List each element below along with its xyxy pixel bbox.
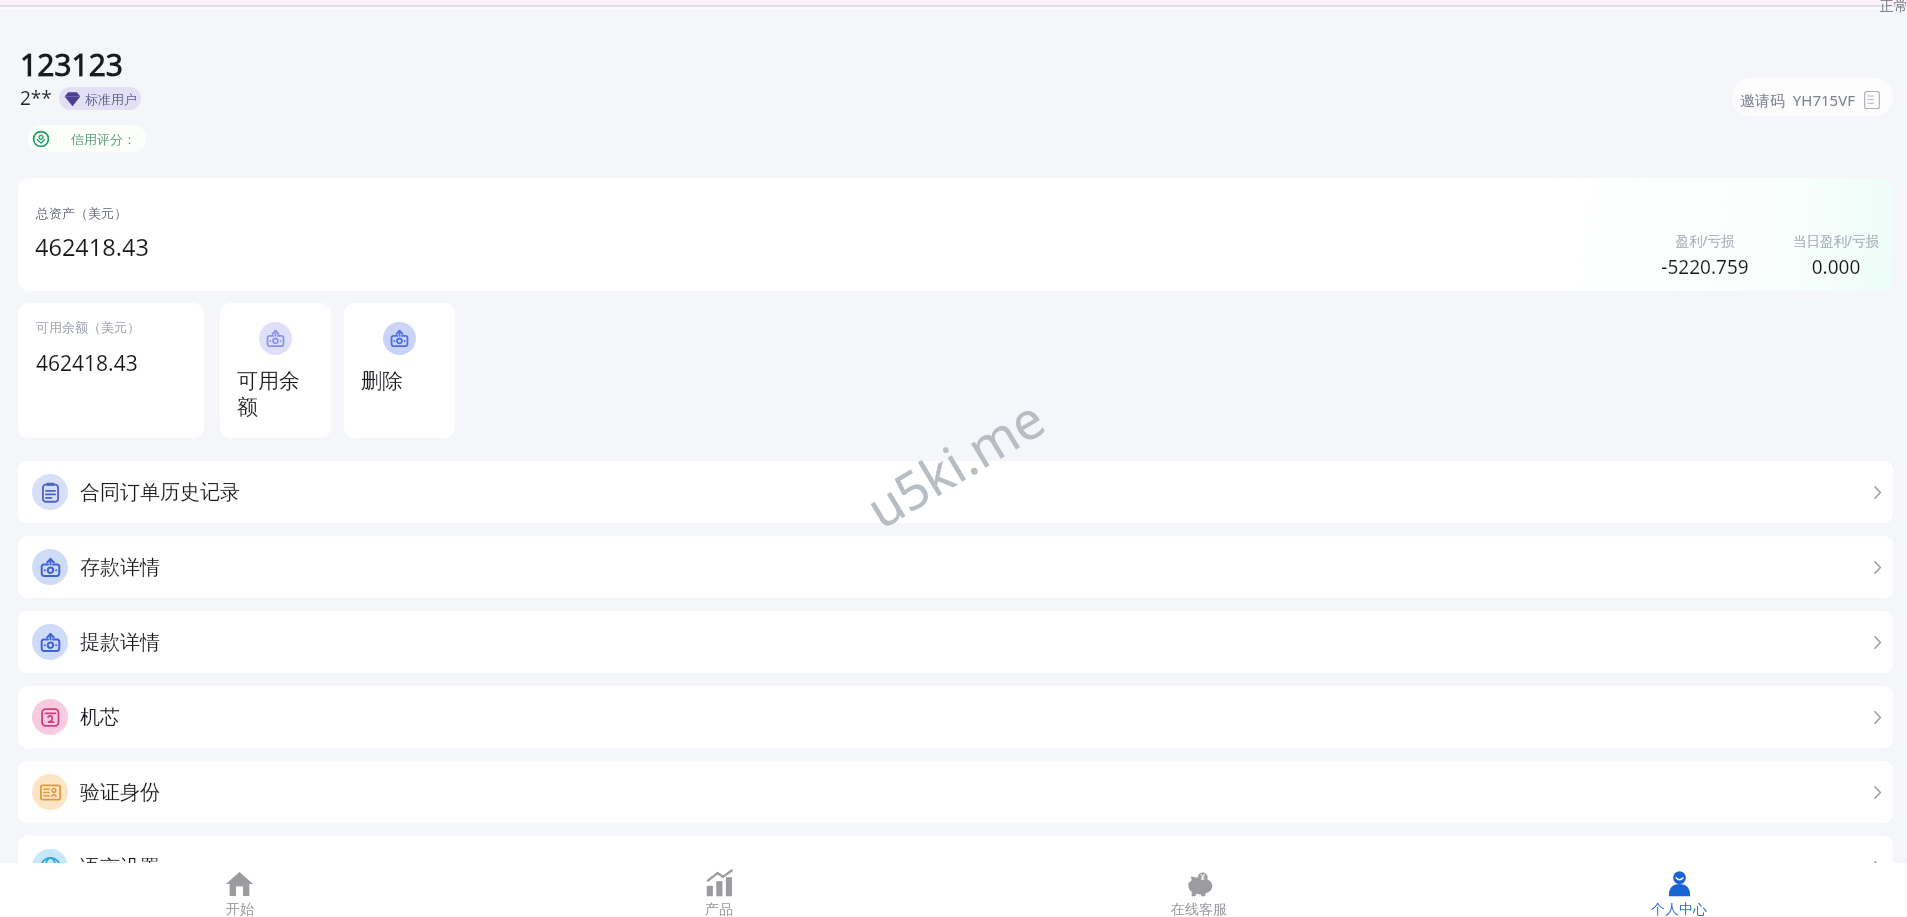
staticText: 总资产（美元） bbox=[36, 205, 127, 221]
button[interactable]: 验证身份 bbox=[18, 761, 1893, 823]
staticText: 当日盈利/亏损 bbox=[1781, 232, 1891, 250]
staticText: 产品 bbox=[705, 901, 733, 917]
button[interactable]: 可用余额 bbox=[220, 303, 331, 438]
staticText: 验证身份 bbox=[80, 780, 160, 805]
staticText: 个人中心 bbox=[1651, 901, 1707, 917]
staticText: 信用评分： bbox=[71, 131, 136, 147]
staticText: u5ki.me bbox=[853, 382, 1056, 543]
staticText: 邀请码 YH715VF bbox=[1740, 90, 1855, 110]
staticText: 可用余额 bbox=[237, 368, 303, 421]
staticText: 删除 bbox=[361, 368, 427, 394]
button[interactable]: 机芯 bbox=[18, 686, 1893, 748]
staticText: 正常 bbox=[1880, 0, 1907, 16]
staticText: 机芯 bbox=[80, 705, 120, 730]
button[interactable]: 删除 bbox=[344, 303, 455, 438]
button[interactable]: 信用评分： bbox=[28, 125, 146, 152]
button[interactable]: 在线客服 bbox=[959, 863, 1439, 917]
button[interactable]: 个人中心 bbox=[1439, 863, 1907, 917]
staticText: 2** bbox=[20, 85, 52, 111]
staticText: 提款详情 bbox=[80, 630, 160, 655]
staticText: 462418.43 bbox=[36, 349, 138, 378]
button[interactable]: 存款详情 bbox=[18, 536, 1893, 598]
staticText: 合同订单历史记录 bbox=[80, 480, 240, 505]
button[interactable]: 可用余额（美元） bbox=[18, 303, 204, 438]
button[interactable]: 标准用户 bbox=[59, 87, 141, 110]
other: Copy invite code bbox=[1864, 91, 1880, 109]
button[interactable]: 产品 bbox=[479, 863, 959, 917]
staticText: 可用余额（美元） bbox=[36, 319, 140, 335]
button[interactable]: 邀请码 YH715VF bbox=[1732, 78, 1893, 116]
staticText: 标准用户 bbox=[85, 91, 137, 107]
staticText: 存款详情 bbox=[80, 555, 160, 580]
staticText: 语言设置 bbox=[80, 855, 160, 880]
button[interactable]: 合同订单历史记录 bbox=[18, 461, 1893, 523]
staticText: 在线客服 bbox=[1171, 901, 1227, 917]
staticText: 462418.43 bbox=[35, 231, 149, 263]
button[interactable]: 总资产（美元） bbox=[18, 178, 1893, 291]
button[interactable]: 开始 bbox=[0, 863, 479, 917]
button[interactable]: 提款详情 bbox=[18, 611, 1893, 673]
staticText: -5220.759 bbox=[1655, 254, 1755, 280]
staticText: 盈利/亏损 bbox=[1655, 232, 1755, 250]
staticText: 123123 bbox=[20, 44, 123, 85]
button[interactable]: 语言设置 bbox=[18, 836, 1893, 898]
staticText: 开始 bbox=[226, 901, 254, 917]
staticText: 0.000 bbox=[1781, 254, 1891, 280]
